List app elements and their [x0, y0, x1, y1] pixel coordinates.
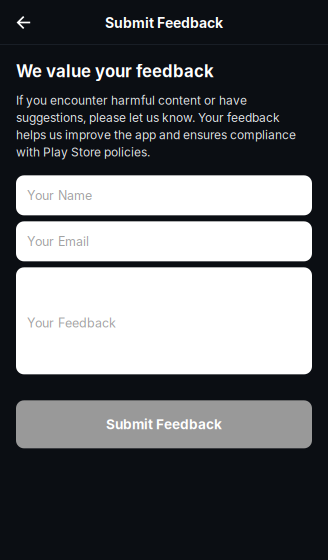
button[interactable]: Your Feedback [16, 267, 312, 374]
staticText: Submit Feedback [106, 416, 222, 433]
button[interactable]: Submit Feedback [16, 400, 312, 448]
staticText: We value your feedback [16, 61, 214, 81]
staticText: Your Email [27, 234, 89, 249]
button[interactable]: Back [9, 6, 39, 37]
staticText: Your Name [27, 188, 92, 203]
staticText: Submit Feedback [105, 14, 223, 31]
button[interactable]: Your Name [16, 175, 312, 215]
button[interactable]: Your Email [16, 221, 312, 261]
staticText: If you encounter harmful content or have… [16, 93, 296, 159]
staticText: Your Feedback [27, 315, 116, 330]
